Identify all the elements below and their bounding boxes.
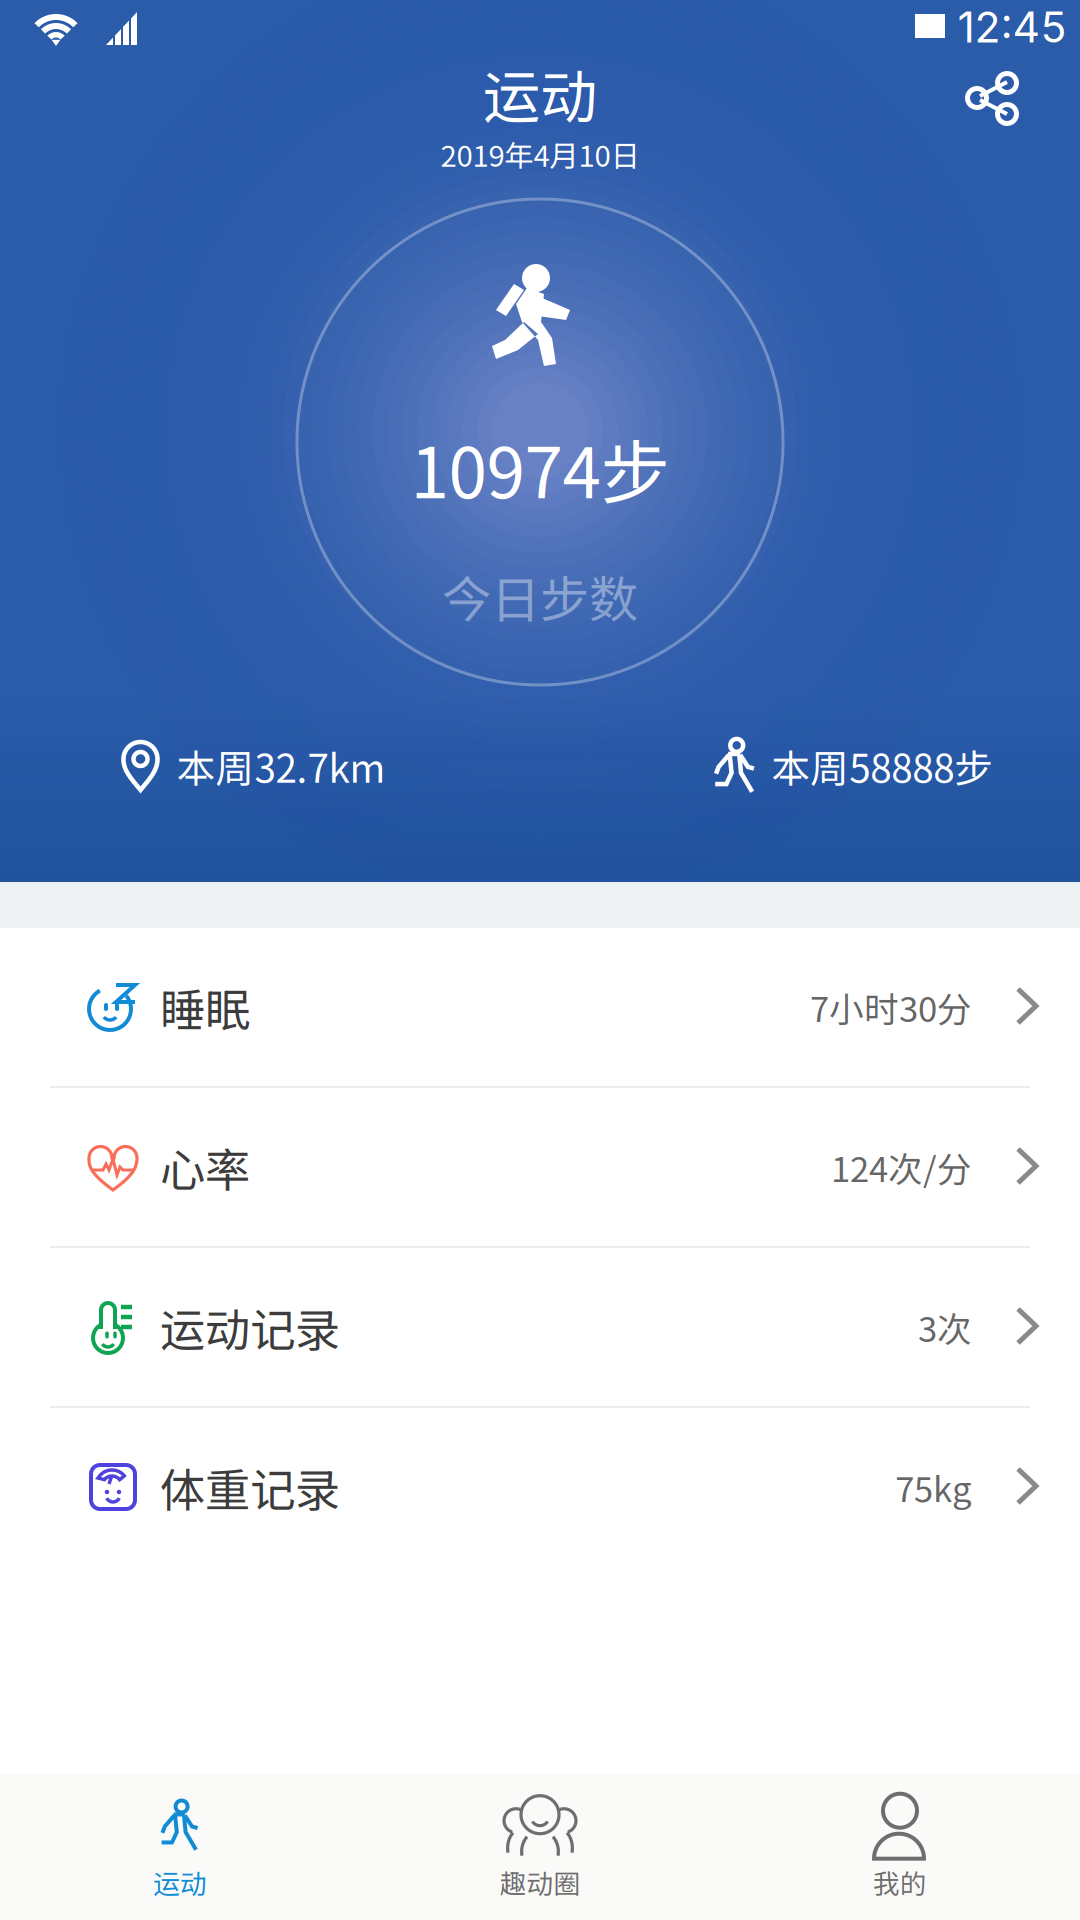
staticText: 3次 [918,1302,972,1352]
staticText: 2019年4月10日 [440,133,639,175]
staticText: 趣动圈 [499,1863,580,1901]
staticText: 心率 [160,1134,250,1200]
button[interactable]: 运动记录 [0,1248,1080,1406]
staticText: 本周58888步 [771,738,993,794]
staticText: 运动 [153,1863,207,1901]
staticText: 我的 [873,1863,927,1901]
button[interactable]: 趣动圈 [360,1776,720,1918]
button[interactable]: 体重记录 [0,1408,1080,1566]
staticText: 本周32.7km [176,738,385,794]
button[interactable]: 我的 [720,1776,1080,1918]
button[interactable]: 运动 [0,1776,360,1918]
staticText: 睡眠 [160,974,250,1040]
staticText: 7小时30分 [810,982,972,1032]
staticText: 运动记录 [160,1294,340,1360]
staticText: 124次/分 [831,1142,972,1192]
staticText: 体重记录 [160,1454,340,1520]
button[interactable]: Share [942,46,1046,150]
staticText: 10974步 [410,418,669,518]
staticText: 75kg [895,1462,972,1512]
staticText: 运动 [483,51,597,134]
button[interactable]: 心率 [0,1088,1080,1246]
button[interactable]: 睡眠 [0,928,1080,1086]
staticText: 12:45 [957,1,1066,53]
staticText: 今日步数 [442,560,638,632]
